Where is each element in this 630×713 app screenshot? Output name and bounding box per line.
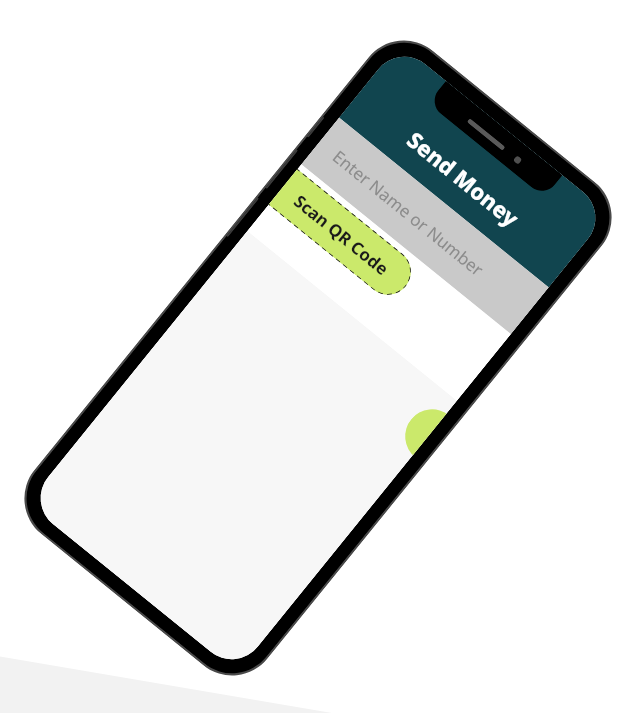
staticText: Scan QR Code — [289, 190, 394, 280]
button[interactable]: Enter Name or Number — [301, 118, 549, 334]
staticText: Enter Name or Number — [328, 145, 489, 281]
button[interactable]: Scan QR Code — [268, 169, 420, 304]
staticText: Send Money — [401, 124, 526, 233]
button[interactable]: Send — [394, 398, 447, 455]
